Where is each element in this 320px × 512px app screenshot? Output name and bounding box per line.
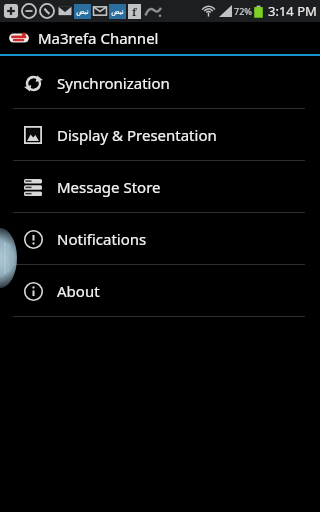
button[interactable]: Message Store: [0, 161, 320, 212]
staticText: Synchronization: [57, 73, 170, 93]
staticText: 3:14 PM: [268, 2, 317, 20]
staticText: نبض: [111, 8, 124, 16]
staticText: نبض: [76, 8, 89, 16]
staticText: f: [132, 4, 137, 19]
button[interactable]: Display & Presentation: [0, 109, 320, 160]
staticText: Display & Presentation: [57, 125, 217, 145]
staticText: Ma3refa Channel: [38, 28, 159, 48]
staticText: About: [57, 281, 100, 301]
button[interactable]: Synchronization: [0, 57, 320, 108]
staticText: 72%: [234, 5, 252, 17]
button[interactable]: Notifications: [0, 213, 320, 264]
button[interactable]: About: [0, 265, 320, 316]
staticText: Notifications: [57, 229, 147, 249]
staticText: Message Store: [57, 177, 161, 197]
